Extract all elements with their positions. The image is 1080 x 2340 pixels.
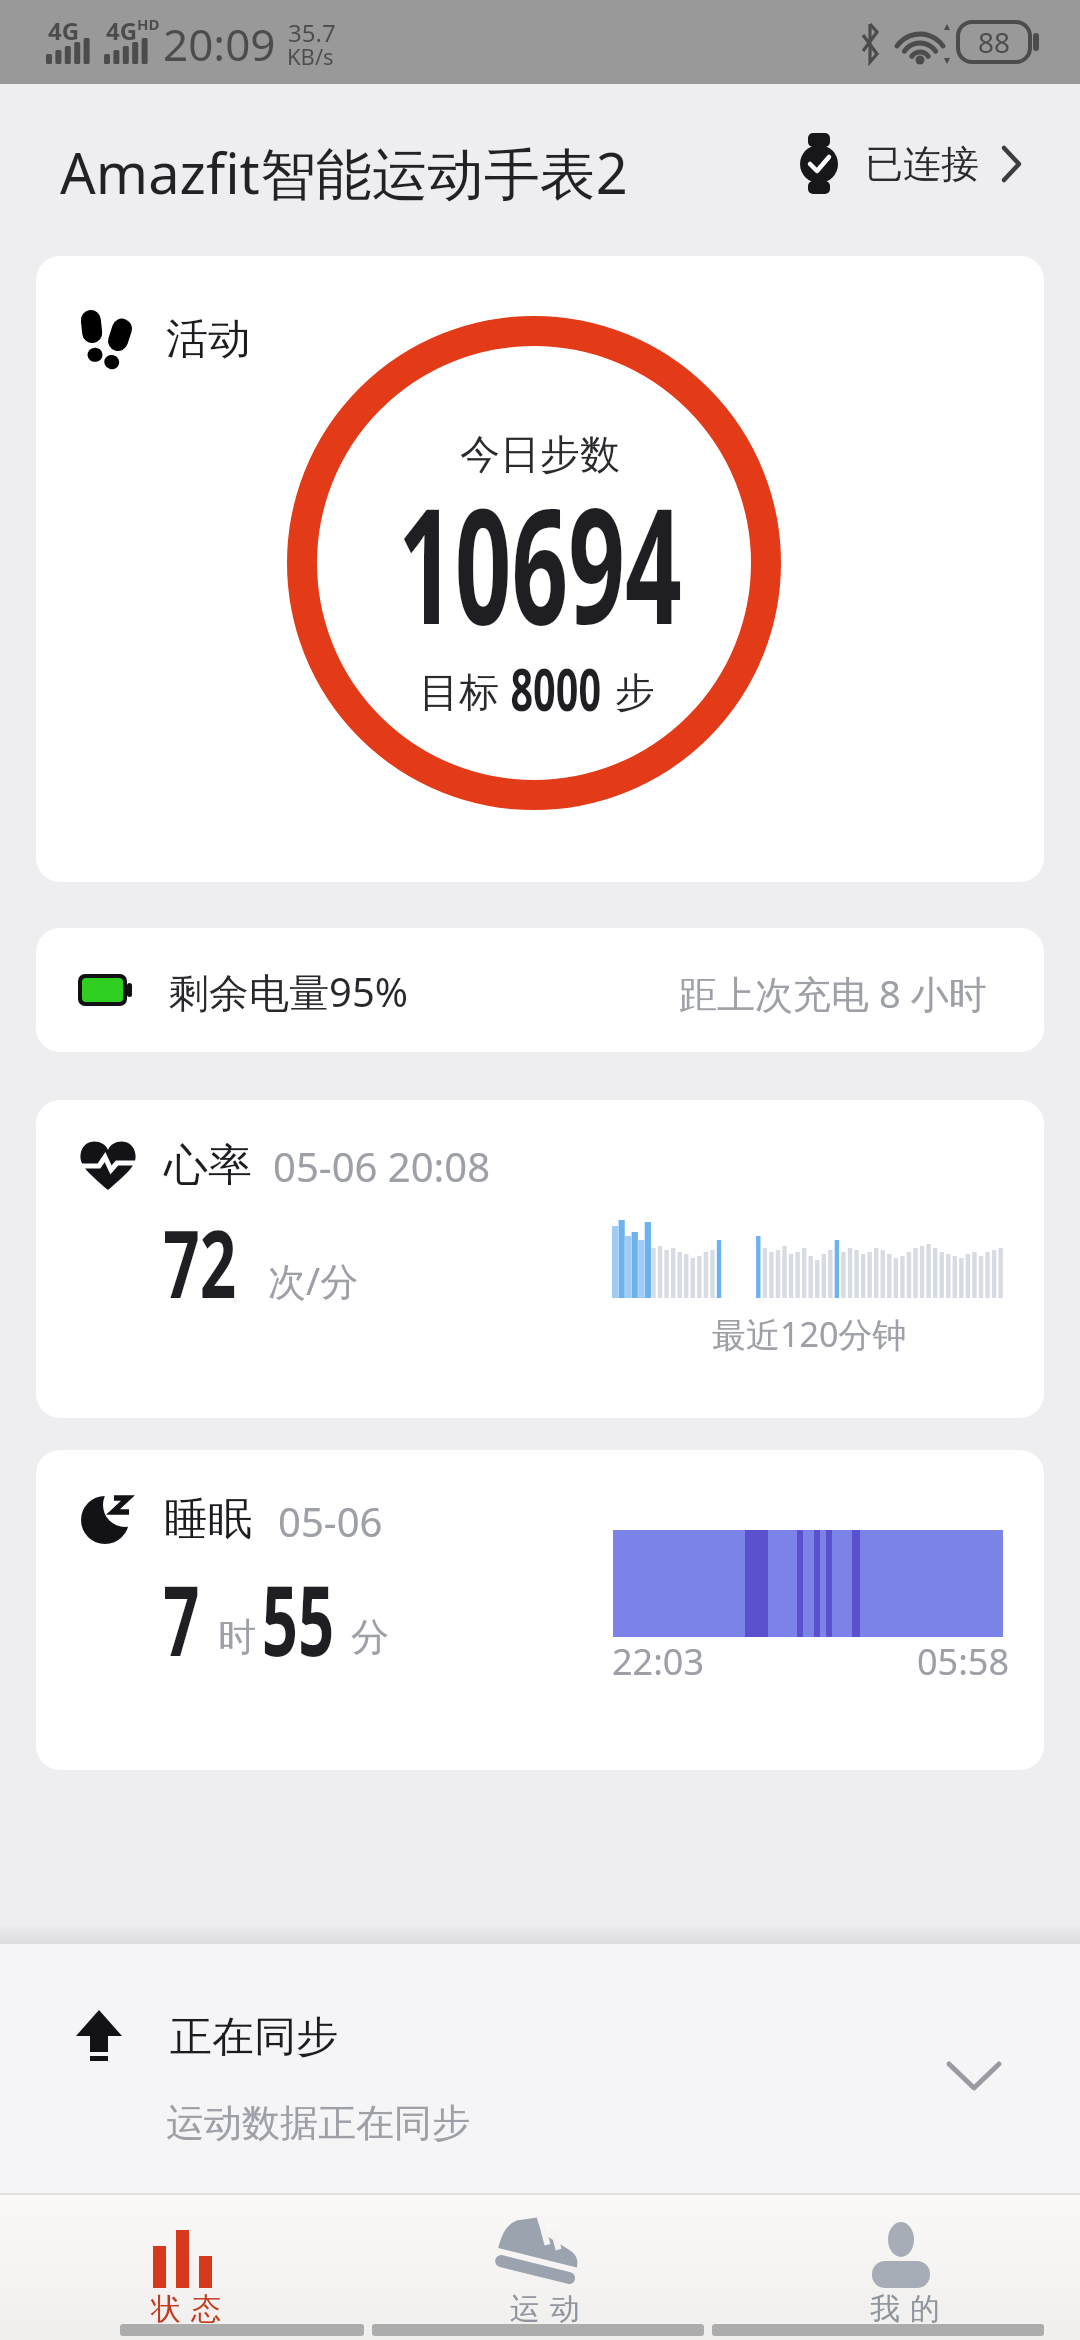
button[interactable] bbox=[61, 2200, 301, 2330]
staticText: 今日步数 bbox=[460, 429, 620, 479]
staticText: 72 bbox=[163, 1198, 237, 1326]
staticText: Amazfit智能运动手表2 bbox=[60, 134, 628, 210]
button[interactable] bbox=[36, 256, 1044, 882]
staticText: 目标 bbox=[419, 667, 499, 717]
button[interactable] bbox=[36, 928, 1044, 1052]
staticText: 次/分 bbox=[268, 1254, 359, 1306]
staticText: 运动数据正在同步 bbox=[166, 2099, 470, 2147]
staticText: 8000 bbox=[510, 647, 602, 729]
staticText: 10694 bbox=[398, 453, 682, 653]
staticText: 时 bbox=[218, 1613, 256, 1661]
staticText: 剩余电量95% bbox=[169, 964, 408, 1019]
staticText: 35.7 bbox=[288, 16, 336, 49]
staticText: 22:03 bbox=[612, 1637, 705, 1686]
staticText: HD bbox=[137, 14, 160, 34]
staticText: 20:09 bbox=[163, 14, 276, 74]
staticText: 88 bbox=[978, 23, 1011, 61]
button[interactable] bbox=[0, 1944, 1080, 2193]
staticText: 55 bbox=[262, 1553, 334, 1684]
staticText: 分 bbox=[351, 1613, 389, 1661]
button[interactable] bbox=[420, 2200, 660, 2330]
staticText: 05-06 bbox=[278, 1494, 383, 1548]
staticText: 睡眠 bbox=[164, 1492, 252, 1547]
staticText: 最近120分钟 bbox=[712, 1311, 907, 1357]
staticText: 我的 bbox=[865, 2290, 945, 2328]
staticText: 4G bbox=[106, 14, 138, 47]
staticText: 运动 bbox=[505, 2290, 585, 2328]
staticText: 4G bbox=[48, 14, 80, 47]
staticText: 状态 bbox=[146, 2290, 226, 2328]
staticText: 步 bbox=[615, 667, 655, 717]
button[interactable] bbox=[780, 2200, 1020, 2330]
staticText: 心率 bbox=[164, 1138, 252, 1193]
staticText: 已连接 bbox=[865, 140, 979, 188]
button[interactable] bbox=[790, 120, 1040, 210]
staticText: 7 bbox=[163, 1553, 200, 1684]
staticText: 05:58 bbox=[917, 1637, 1010, 1686]
staticText: 正在同步 bbox=[170, 2011, 338, 2064]
staticText: 05-06 20:08 bbox=[273, 1139, 491, 1193]
staticText: 活动 bbox=[166, 313, 250, 366]
staticText: 距上次充电 8 小时 bbox=[679, 967, 987, 1019]
button[interactable] bbox=[36, 1450, 1044, 1770]
staticText: KB/s bbox=[287, 41, 334, 71]
button[interactable] bbox=[36, 1100, 1044, 1418]
